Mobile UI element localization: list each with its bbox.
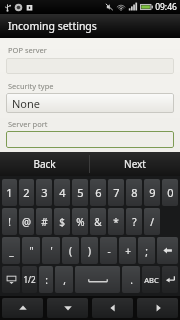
staticText: $ xyxy=(59,215,65,229)
staticText: 2 xyxy=(23,185,30,200)
button[interactable]: , xyxy=(55,266,73,293)
button[interactable]: 9 xyxy=(144,179,160,206)
staticText: + xyxy=(125,244,131,258)
button[interactable]: ) xyxy=(81,237,98,264)
button[interactable]: ; xyxy=(138,237,155,264)
staticText: _ xyxy=(9,244,14,258)
staticText: , xyxy=(63,273,66,287)
button[interactable]: 8 xyxy=(126,179,142,206)
staticText: / xyxy=(150,215,154,229)
button[interactable]: $ xyxy=(54,208,70,235)
button[interactable]: " xyxy=(22,237,40,264)
button[interactable]: % xyxy=(72,208,88,235)
staticText: % xyxy=(76,215,85,229)
button[interactable]: / xyxy=(144,208,160,235)
button[interactable]: ? xyxy=(126,208,142,235)
staticText: # xyxy=(41,215,48,229)
button[interactable]: 5 xyxy=(72,179,88,206)
staticText: @ xyxy=(22,215,31,229)
button[interactable]: + xyxy=(119,237,136,264)
staticText: Security type xyxy=(8,81,54,91)
button[interactable]: Left xyxy=(92,298,133,318)
button[interactable]: Next xyxy=(90,152,180,176)
staticText: ( xyxy=(69,244,72,258)
button[interactable]: : xyxy=(39,266,53,293)
button[interactable]: @ xyxy=(19,208,34,235)
staticText: ? xyxy=(132,215,137,229)
button[interactable]: & xyxy=(90,208,106,235)
button[interactable]: * xyxy=(108,208,124,235)
staticText: ) xyxy=(88,244,91,258)
staticText: 3 xyxy=(41,185,48,200)
staticText: 5 xyxy=(77,185,84,200)
staticText: Server port xyxy=(8,119,48,129)
button[interactable]: . xyxy=(122,266,140,293)
button[interactable] xyxy=(6,58,174,74)
staticText: 1 xyxy=(6,185,13,200)
button[interactable]: 1/2 xyxy=(22,266,37,293)
button[interactable]: Right xyxy=(137,298,178,318)
staticText: ' xyxy=(50,244,53,258)
button[interactable]: 1 xyxy=(2,179,17,206)
button[interactable]: ' xyxy=(42,237,60,264)
button[interactable]: Space xyxy=(75,266,120,293)
staticText: & xyxy=(94,215,102,229)
button[interactable]: Down xyxy=(47,298,88,318)
staticText: " xyxy=(29,244,34,258)
staticText: . xyxy=(130,273,133,287)
staticText: * xyxy=(113,215,119,229)
staticText: 1/2 xyxy=(23,274,36,285)
button[interactable]: _ xyxy=(2,237,20,264)
staticText: Next xyxy=(124,157,146,171)
staticText: Incoming settings xyxy=(8,19,97,33)
staticText: : xyxy=(45,273,48,287)
staticText: ABC xyxy=(144,275,159,285)
staticText: 8 xyxy=(131,185,138,200)
button[interactable]: ( xyxy=(62,237,79,264)
staticText: Back xyxy=(33,157,56,171)
button[interactable]: 4 xyxy=(54,179,70,206)
staticText: None xyxy=(12,96,41,111)
button[interactable]: Up xyxy=(2,298,43,318)
button[interactable]: 0 xyxy=(162,179,178,206)
staticText: 6 xyxy=(95,185,102,200)
button[interactable]: ABC xyxy=(142,266,160,293)
staticText: 4 xyxy=(59,185,66,200)
button[interactable]: ! xyxy=(2,208,17,235)
button[interactable]: Backspace xyxy=(157,237,178,264)
button[interactable]: 7 xyxy=(108,179,124,206)
staticText: 0 xyxy=(167,185,174,200)
button[interactable]: - xyxy=(100,237,117,264)
button[interactable]: # xyxy=(36,208,52,235)
button[interactable]: None xyxy=(6,93,174,113)
staticText: POP server xyxy=(8,45,47,55)
button[interactable]: Back xyxy=(0,152,89,176)
button[interactable]: 6 xyxy=(90,179,106,206)
staticText: 09:46 xyxy=(155,1,177,13)
staticText: ! xyxy=(8,215,11,229)
button[interactable] xyxy=(6,131,174,148)
staticText: - xyxy=(107,244,111,258)
button[interactable]: 2 xyxy=(19,179,34,206)
staticText: 7 xyxy=(113,185,120,200)
button[interactable]: Hide keyboard xyxy=(2,266,20,293)
button[interactable]: Enter xyxy=(162,266,178,293)
button[interactable]: 3 xyxy=(36,179,52,206)
staticText: 9 xyxy=(149,185,156,200)
staticText: ; xyxy=(145,244,148,258)
